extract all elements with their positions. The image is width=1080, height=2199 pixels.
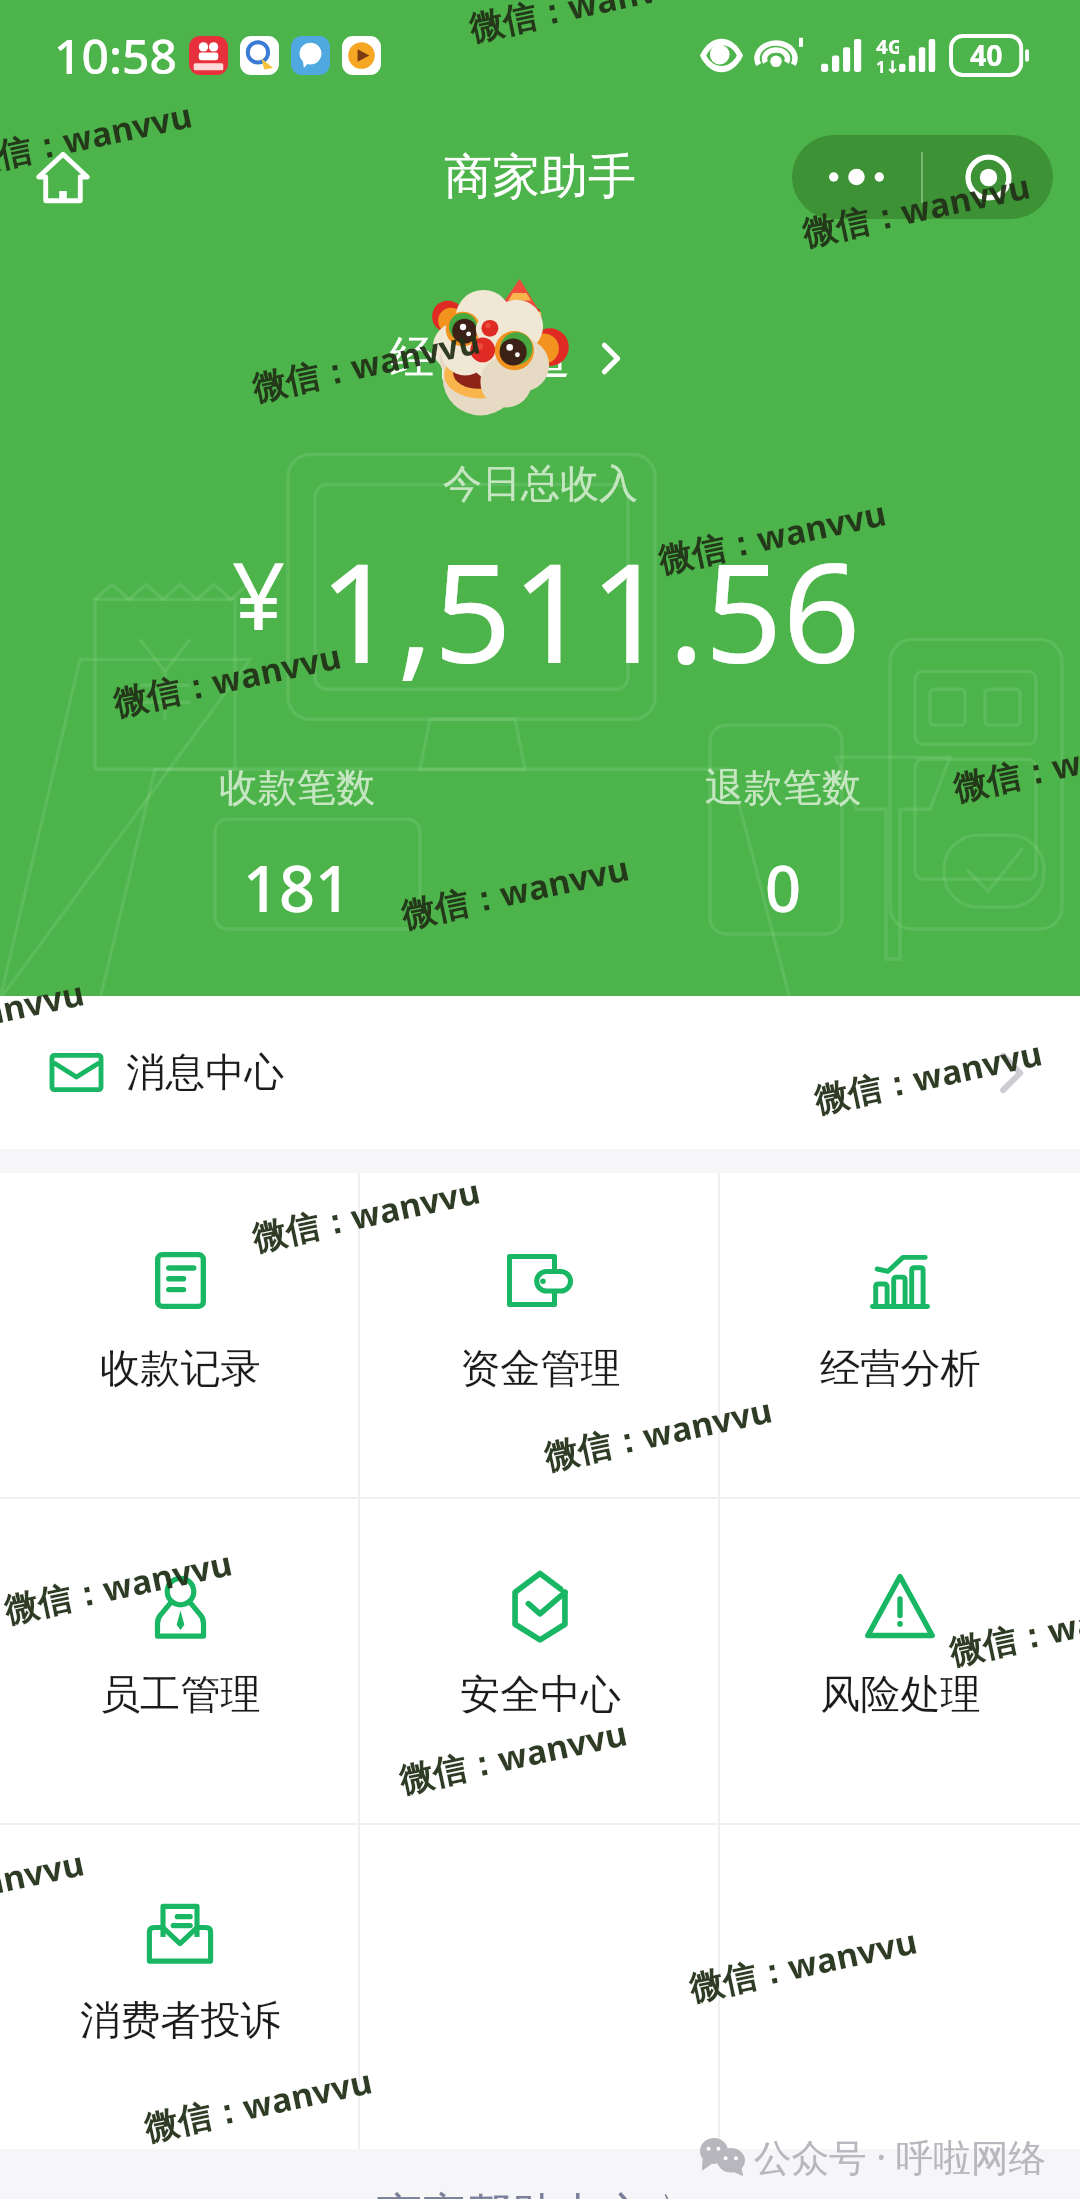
staticText: 今日总收入 [443,459,638,508]
staticText: 微信：wanvvu [465,0,701,51]
staticText: 微信：wanvvu [0,969,88,1063]
staticText: 员工管理 [100,1669,261,1720]
staticText: 退款笔数 [705,763,861,812]
staticText: 1↓ [876,55,899,78]
staticText: 微信：wanvvu [109,632,345,726]
staticText: 消息中心 [126,1048,285,1098]
staticText: 经营频道 [390,330,570,387]
staticText: 收款笔数 [219,763,375,812]
staticText: 微信：wanvvu [949,717,1080,811]
staticText: 181 [243,845,352,931]
staticText: 微信：wanvvu [0,1839,88,1933]
button[interactable]: Close [923,135,1053,219]
staticText: 经营分析 [820,1343,981,1394]
staticText: 微信：wanvvu [248,317,484,411]
staticText: 微信：wanvvu [810,1029,1046,1123]
staticText: 1,511.56 [319,517,861,703]
staticText: 0 [765,845,802,931]
staticText: 微信：wanvvu [397,844,633,938]
button[interactable]: 安全中心 [360,1499,720,1823]
staticText: 40 [970,36,1003,75]
staticText: 微信：wanvvu [945,1581,1080,1675]
button[interactable]: 经营频道 [366,324,660,393]
staticText: 10:58 [54,23,177,88]
staticText: 资金管理 [460,1343,621,1394]
staticText: 商家助手 [444,147,636,207]
staticText: 商家帮助中心 〉 [377,2182,704,2199]
staticText: 微信：wanvvu [395,1709,631,1803]
button[interactable]: More options [792,135,921,219]
button[interactable]: 资金管理 [360,1173,720,1497]
staticText: 微信：wanvvu [685,1917,921,2011]
staticText: 微信：wanvvu [0,1539,236,1633]
button[interactable]: 员工管理 [0,1499,360,1823]
staticText: 公众号 · 呼啦网络 [754,2131,1047,2181]
button[interactable]: 消费者投诉 [0,1825,360,2149]
staticText: 收款记录 [100,1343,261,1394]
button[interactable]: 经营分析 [720,1173,1080,1497]
staticText: ¥ [232,531,286,658]
staticText: 微信：wanvvu [0,91,196,185]
staticText: 消费者投诉 [80,1995,281,2046]
button[interactable]: 收款记录 [0,1173,360,1497]
staticText: 微信：wanvvu [798,162,1034,256]
staticText: 微信：wanvvu [540,1386,776,1480]
button[interactable]: Home [36,150,90,204]
staticText: 微信：wanvvu [654,489,890,583]
staticText: 4G [876,32,899,60]
staticText: 微信：wanvvu [248,1167,484,1261]
button[interactable]: 消息中心 [0,996,1080,1149]
button[interactable]: 风险处理 [720,1499,1080,1823]
staticText: 安全中心 [460,1669,621,1720]
staticText: 风险处理 [820,1669,981,1720]
staticText: 微信：wanvvu [140,2057,376,2151]
